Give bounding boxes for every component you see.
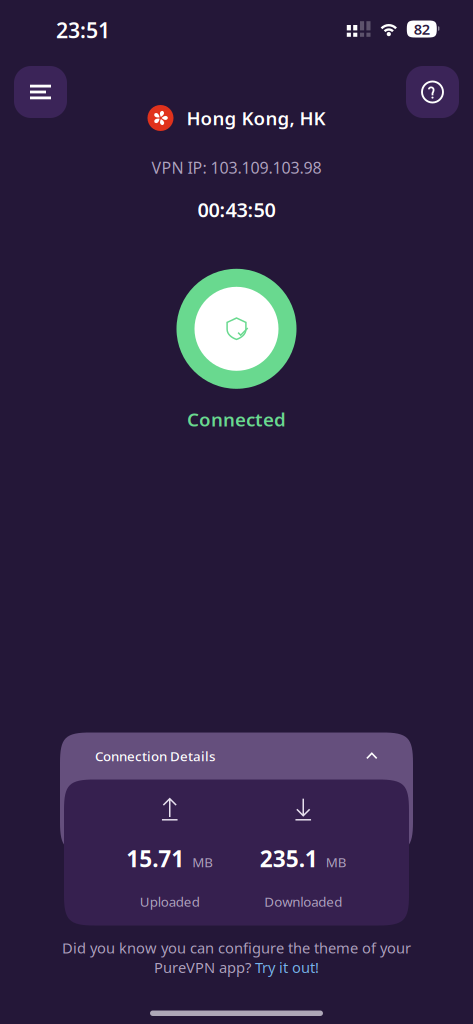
staticText: Try it out! [255,957,319,977]
staticText: 82 [414,19,430,39]
staticText: 00:43:50 [197,196,275,223]
staticText: Did you know you can configure the theme… [62,938,411,957]
button[interactable]: Help [406,66,459,118]
staticText: MB [326,853,347,871]
staticText: Downloaded [264,893,342,910]
staticText: Connected [187,407,286,432]
button[interactable]: Connection Details [60,732,413,852]
staticText: Hong Kong, HK [186,106,325,130]
staticText: 235.1 [260,843,318,874]
staticText: PureVPN app? [154,957,251,977]
button[interactable]: Hong Kong, HK [147,102,325,134]
staticText: Uploaded [140,893,200,910]
staticText: VPN IP: 103.109.103.98 [151,157,321,178]
button[interactable]: Try it out! [255,957,319,977]
staticText: 23:51 [56,16,110,44]
button[interactable]: Connection status [176,269,296,389]
staticText: 15.71 [126,843,184,874]
button[interactable]: Menu [14,66,67,118]
staticText: Connection Details [95,747,215,765]
staticText: MB [192,853,213,871]
